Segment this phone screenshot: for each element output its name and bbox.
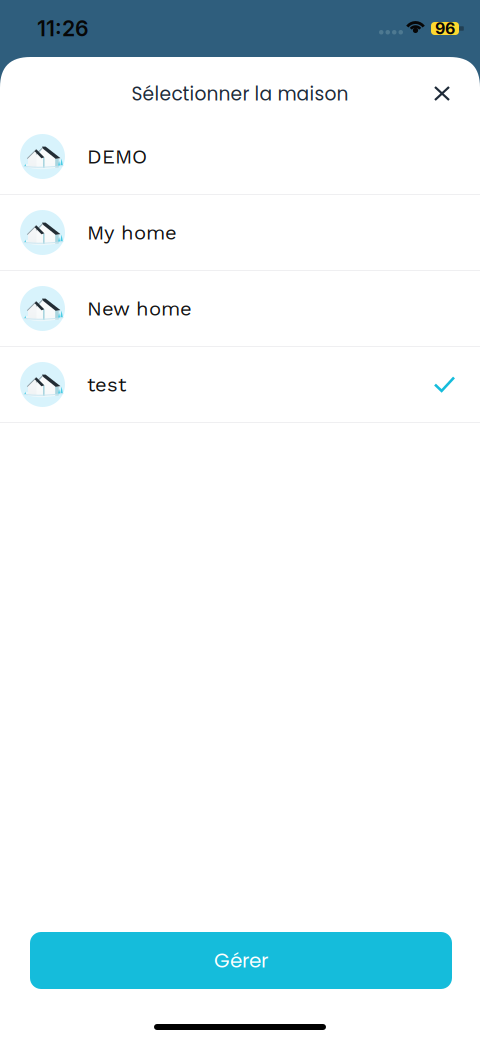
staticText: My home	[87, 221, 177, 244]
staticText: 11:26	[37, 16, 89, 41]
staticText: DEMO	[87, 145, 147, 168]
staticText: test	[87, 373, 126, 396]
button[interactable]: My home	[0, 195, 480, 271]
staticText: 96	[435, 19, 455, 38]
button[interactable]: Gérer	[30, 932, 452, 989]
button[interactable]: test	[0, 347, 480, 423]
button[interactable]: Close	[420, 60, 464, 115]
staticText: New home	[87, 297, 192, 320]
button[interactable]: DEMO	[0, 119, 480, 195]
staticText: Gérer	[214, 946, 268, 974]
staticText: Sélectionner la maison	[131, 81, 348, 107]
button[interactable]: New home	[0, 271, 480, 347]
